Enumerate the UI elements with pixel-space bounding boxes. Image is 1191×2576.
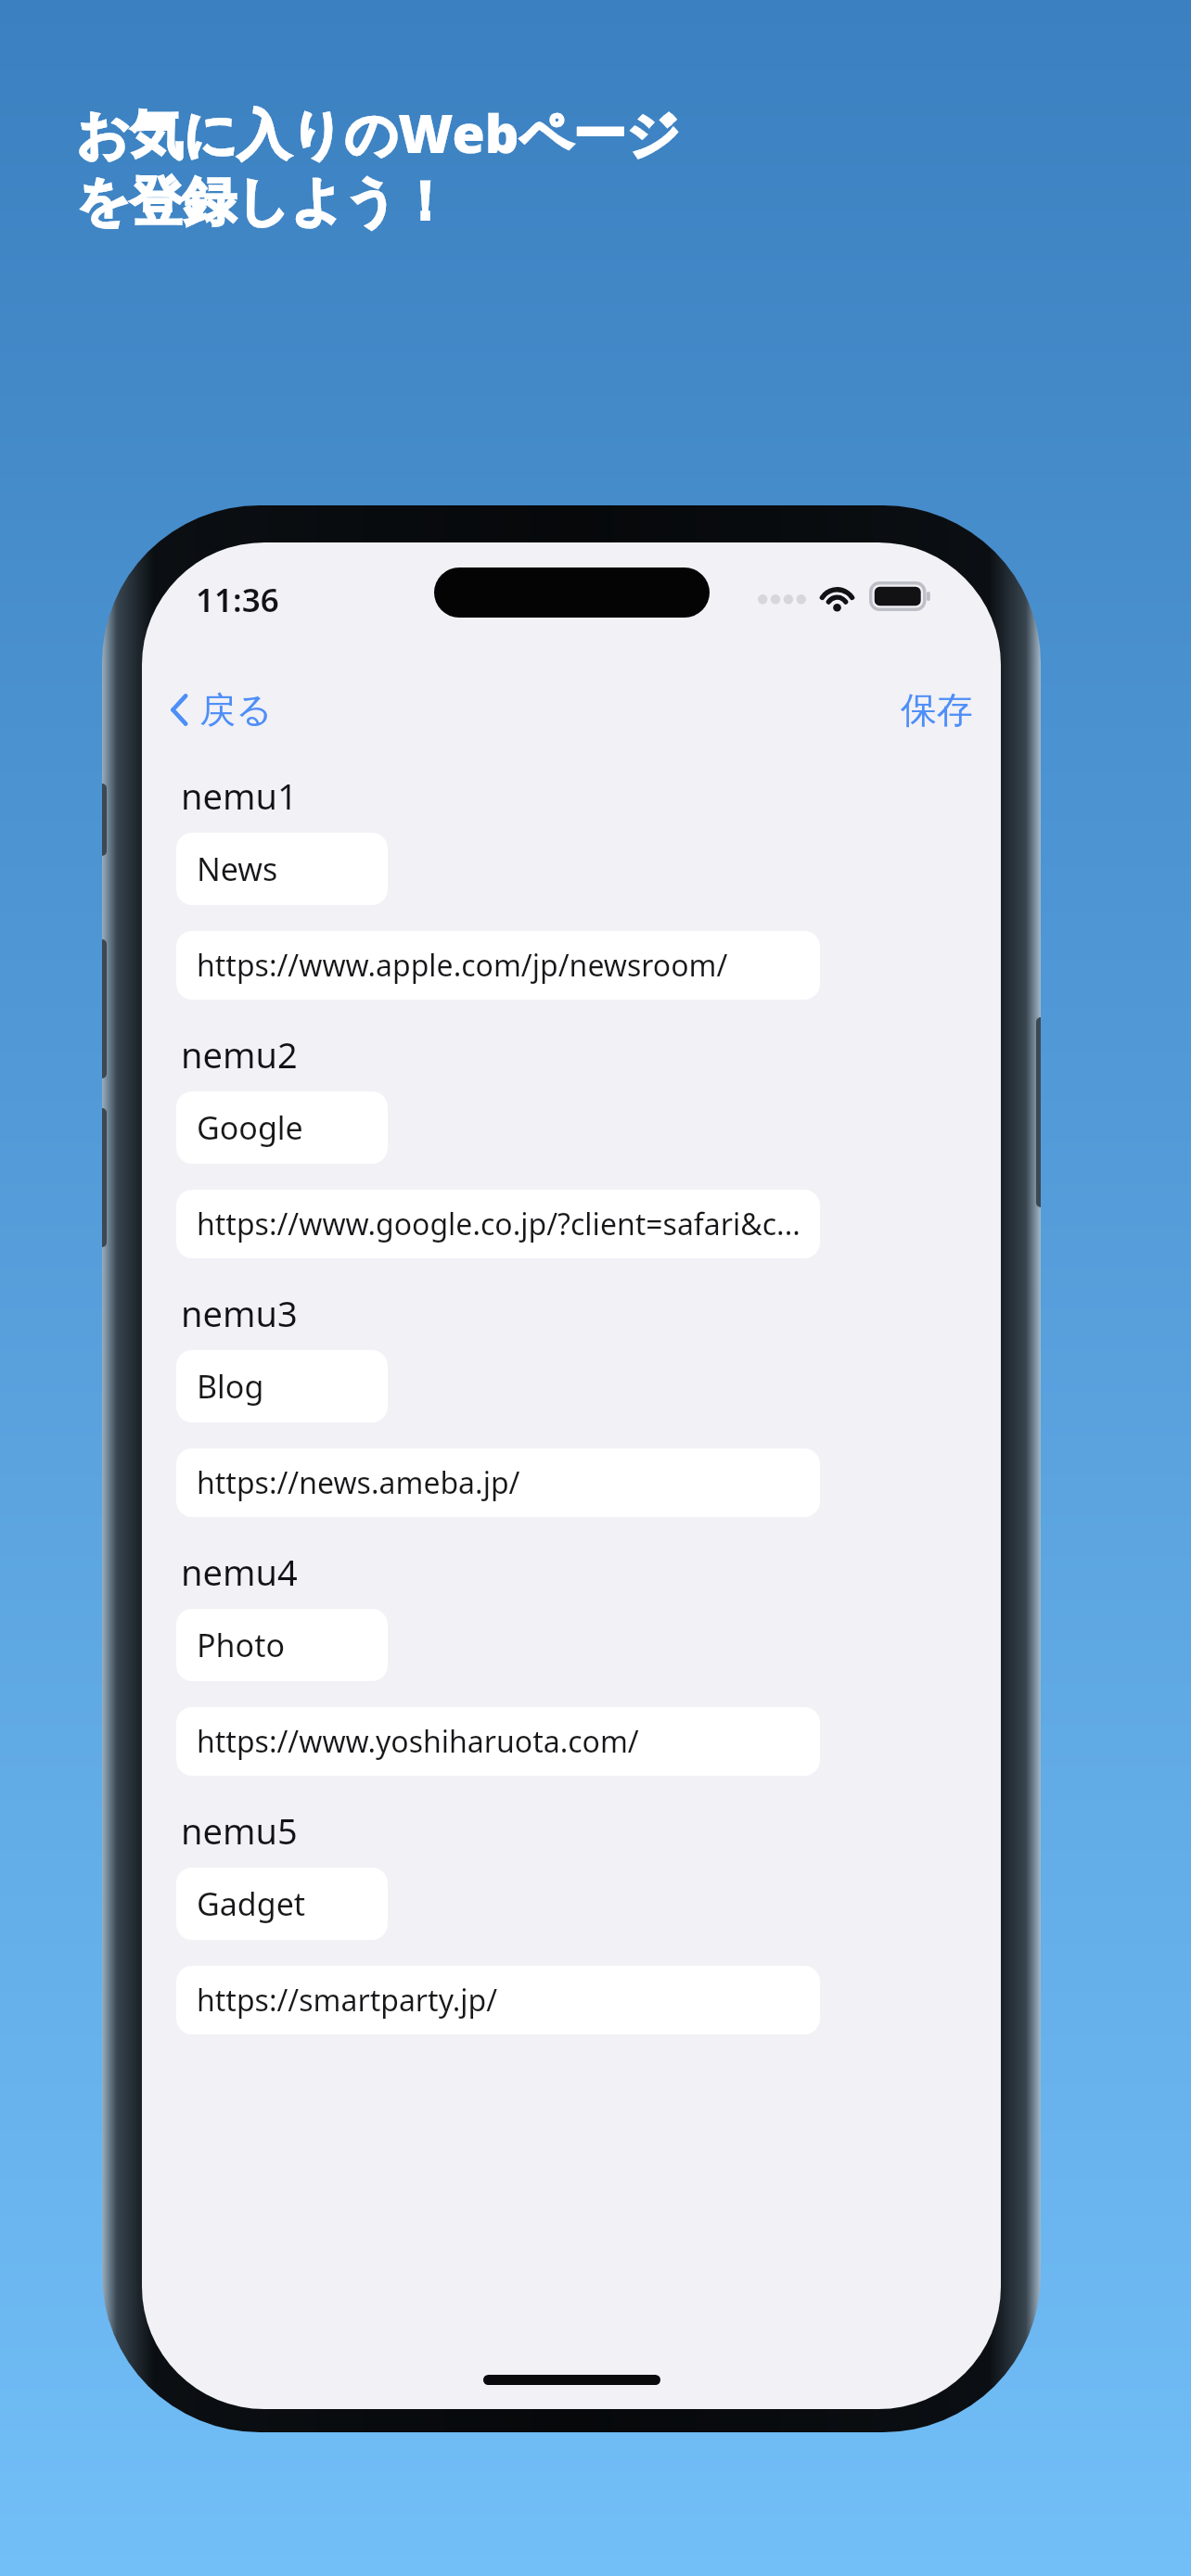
staticText: https://news.ameba.jp/ xyxy=(197,1462,520,1503)
button[interactable]: Google xyxy=(176,1091,388,1164)
staticText: nemu5 xyxy=(181,1806,298,1855)
other: Back xyxy=(170,693,189,727)
staticText: Gadget xyxy=(197,1882,306,1925)
button[interactable]: https://www.google.co.jp/?client=safari&… xyxy=(176,1190,820,1258)
staticText: News xyxy=(197,848,278,890)
button[interactable]: Gadget xyxy=(176,1868,388,1940)
staticText: https://www.yoshiharuota.com/ xyxy=(197,1721,639,1762)
staticText: https://www.apple.com/jp/newsroom/ xyxy=(197,945,728,986)
staticText: Google xyxy=(197,1106,303,1149)
button[interactable]: https://www.yoshiharuota.com/ xyxy=(176,1707,820,1776)
staticText: nemu2 xyxy=(181,1030,298,1078)
button[interactable]: https://smartparty.jp/ xyxy=(176,1966,820,2034)
staticText: 11:36 xyxy=(196,578,279,622)
staticText: nemu1 xyxy=(181,772,298,820)
button[interactable]: Photo xyxy=(176,1609,388,1681)
staticText: nemu3 xyxy=(181,1289,298,1337)
button[interactable]: News xyxy=(176,833,388,905)
button[interactable]: https://news.ameba.jp/ xyxy=(176,1448,820,1517)
button[interactable]: https://www.apple.com/jp/newsroom/ xyxy=(176,931,820,1000)
staticText: https://smartparty.jp/ xyxy=(197,1980,498,2021)
staticText: nemu4 xyxy=(181,1548,298,1596)
button[interactable]: Back xyxy=(162,682,280,738)
button[interactable]: 保存 xyxy=(893,682,980,738)
staticText: Blog xyxy=(197,1365,264,1408)
staticText: お気に入りのWebページ xyxy=(76,96,680,169)
staticText: Photo xyxy=(197,1624,285,1666)
staticText: を登録しよう！ xyxy=(76,169,452,236)
button[interactable]: Blog xyxy=(176,1350,388,1422)
staticText: 戻る xyxy=(199,687,273,733)
staticText: 保存 xyxy=(901,687,973,733)
staticText: https://www.google.co.jp/?client=safari&… xyxy=(197,1204,800,1244)
